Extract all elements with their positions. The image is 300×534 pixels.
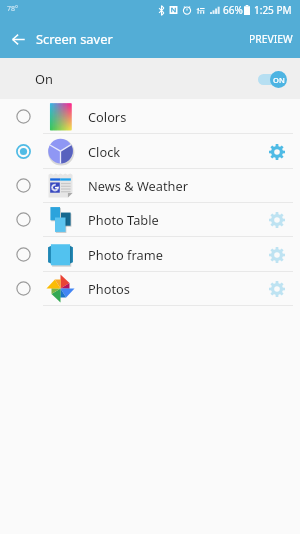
button[interactable]: Settings for Photo Table [260,203,294,237]
staticText: 78° [7,4,19,14]
button[interactable]: Photos [0,271,300,306]
button[interactable]: Back [6,27,30,51]
staticText: 1:25 PM [254,3,292,17]
button[interactable]: Settings for Photo frame [260,238,294,272]
staticText: Photo Table [88,211,159,228]
staticText: Screen saver [36,30,113,48]
staticText: Colors [88,108,127,125]
button[interactable]: Colors [0,99,300,134]
button[interactable]: PREVIEW [242,24,300,54]
button[interactable]: Photo frame [0,237,300,272]
button[interactable]: Settings for Clock [260,135,294,169]
button[interactable]: Photo Table [0,202,300,237]
button[interactable]: News & Weather [0,168,300,203]
staticText: ON [273,75,285,85]
staticText: Clock [88,143,121,160]
staticText: Photos [88,280,130,297]
staticText: News & Weather [88,177,188,194]
staticText: 66% [223,3,243,17]
staticText: On [35,70,53,87]
staticText: PREVIEW [249,32,293,46]
staticText: Photo frame [88,246,163,263]
button[interactable]: Settings for Photos [260,272,294,306]
button[interactable]: On [0,58,300,99]
button[interactable]: Clock [0,134,300,169]
